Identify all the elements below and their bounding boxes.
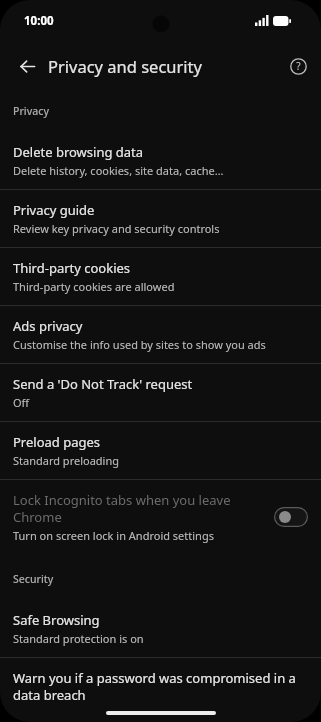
button[interactable]: Help bbox=[279, 47, 317, 85]
button[interactable]: Send a 'Do Not Track' request bbox=[0, 364, 321, 421]
staticText: Third-party cookies are allowed bbox=[13, 279, 175, 294]
staticText: Ads privacy bbox=[13, 317, 83, 335]
staticText: Privacy guide bbox=[13, 201, 95, 219]
staticText: Standard protection is on bbox=[13, 631, 144, 646]
staticText: Review key privacy and security controls bbox=[13, 221, 220, 236]
staticText: Security bbox=[13, 572, 54, 586]
staticText: Customise the info used by sites to show… bbox=[13, 337, 266, 352]
button[interactable]: Third-party cookies bbox=[0, 248, 321, 305]
button[interactable]: Warn you if a password was compromised i… bbox=[0, 658, 321, 715]
button[interactable]: Lock Incognito tabs toggle bbox=[274, 507, 308, 527]
staticText: Privacy and security bbox=[48, 55, 202, 77]
button[interactable]: Preload pages bbox=[0, 422, 321, 479]
staticText: Third-party cookies bbox=[13, 259, 131, 277]
button[interactable]: Safe Browsing bbox=[0, 600, 321, 657]
button[interactable]: Privacy guide bbox=[0, 190, 321, 247]
staticText: Standard preloading bbox=[13, 453, 119, 468]
staticText: Off bbox=[13, 395, 30, 410]
button[interactable]: Ads privacy bbox=[0, 306, 321, 363]
staticText: Privacy bbox=[13, 104, 49, 118]
button[interactable]: Delete browsing data bbox=[0, 132, 321, 189]
staticText: Delete history, cookies, site data, cach… bbox=[13, 163, 224, 178]
staticText: Preload pages bbox=[13, 433, 101, 451]
staticText: Safe Browsing bbox=[13, 611, 100, 629]
button[interactable]: Back bbox=[8, 47, 46, 85]
staticText: 10:00 bbox=[24, 13, 54, 29]
staticText: ? bbox=[296, 59, 301, 73]
button[interactable]: Lock Incognito tabs when you leave Chrom… bbox=[0, 480, 321, 554]
staticText: Turn on screen lock in Android settings bbox=[13, 528, 214, 543]
staticText: Lock Incognito tabs when you leave Chrom… bbox=[13, 491, 266, 526]
staticText: Warn you if a password was compromised i… bbox=[13, 669, 308, 704]
staticText: Delete browsing data bbox=[13, 143, 144, 161]
staticText: Send a 'Do Not Track' request bbox=[13, 375, 193, 393]
